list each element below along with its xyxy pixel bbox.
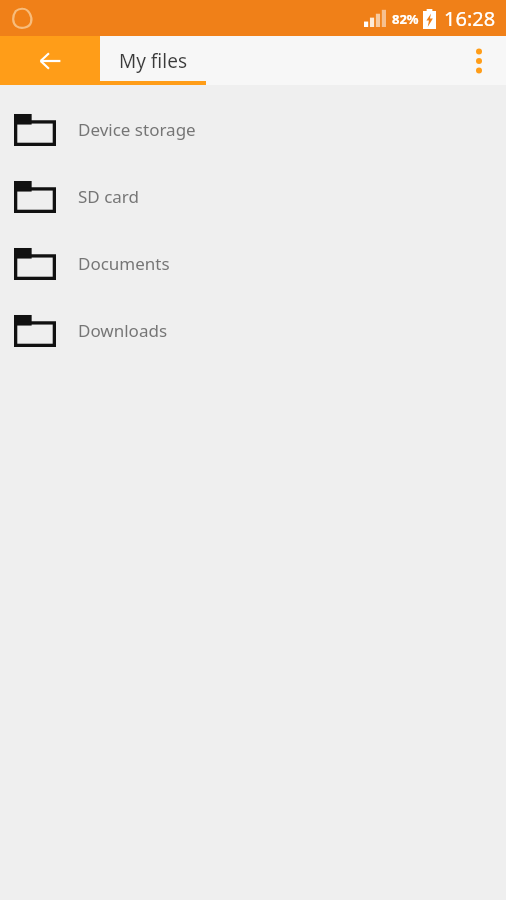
staticText: My files xyxy=(119,48,188,74)
button[interactable]: My files xyxy=(100,36,206,85)
staticText: Device storage xyxy=(78,118,196,141)
button[interactable]: Back xyxy=(0,36,100,85)
staticText: Documents xyxy=(78,252,170,275)
staticText: Downloads xyxy=(78,319,168,342)
button[interactable]: More options xyxy=(452,36,506,85)
staticText: 82% xyxy=(392,10,419,28)
staticText: 16:28 xyxy=(444,5,496,32)
staticText: SD card xyxy=(78,185,139,208)
button[interactable]: SD card xyxy=(0,163,506,230)
button[interactable]: Device storage xyxy=(0,96,506,163)
button[interactable]: Downloads xyxy=(0,297,506,364)
button[interactable]: Documents xyxy=(0,230,506,297)
